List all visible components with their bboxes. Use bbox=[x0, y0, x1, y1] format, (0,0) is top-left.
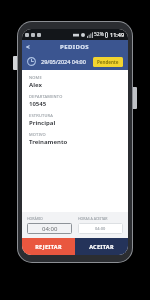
staticText: Alex bbox=[29, 81, 42, 89]
staticText: 11:49 bbox=[110, 31, 125, 38]
staticText: Principal bbox=[29, 119, 56, 127]
staticText: Pendente bbox=[97, 59, 119, 65]
button[interactable]: REJEITAR bbox=[22, 238, 75, 255]
staticText: NOME bbox=[29, 75, 42, 80]
staticText: HORAS A ACEITAR bbox=[78, 216, 108, 221]
button[interactable]: 04:00 bbox=[78, 223, 123, 234]
button[interactable]: Voltar bbox=[22, 42, 34, 52]
staticText: 52% bbox=[94, 31, 104, 38]
staticText: 29/05/2024 04:00 bbox=[41, 58, 86, 65]
staticText: REJEITAR bbox=[35, 243, 62, 250]
button[interactable]: Pendente bbox=[93, 57, 123, 67]
staticText: HORÁRIO bbox=[27, 216, 43, 221]
staticText: ACEITAR bbox=[89, 243, 114, 250]
staticText: 04:00 bbox=[42, 225, 58, 233]
button[interactable]: 29/05/2024 04:00 bbox=[22, 53, 128, 70]
staticText: MOTIVO bbox=[29, 132, 46, 137]
staticText: ESTRUTURA bbox=[29, 113, 54, 118]
staticText: PEDIDOS bbox=[60, 43, 90, 51]
staticText: Treinamento bbox=[29, 138, 68, 146]
button[interactable]: 04:00 bbox=[27, 223, 72, 234]
button[interactable]: ACEITAR bbox=[75, 238, 128, 255]
staticText: 10545 bbox=[29, 100, 47, 108]
staticText: DEPARTAMENTO bbox=[29, 94, 63, 99]
staticText: 04:00 bbox=[95, 226, 106, 231]
